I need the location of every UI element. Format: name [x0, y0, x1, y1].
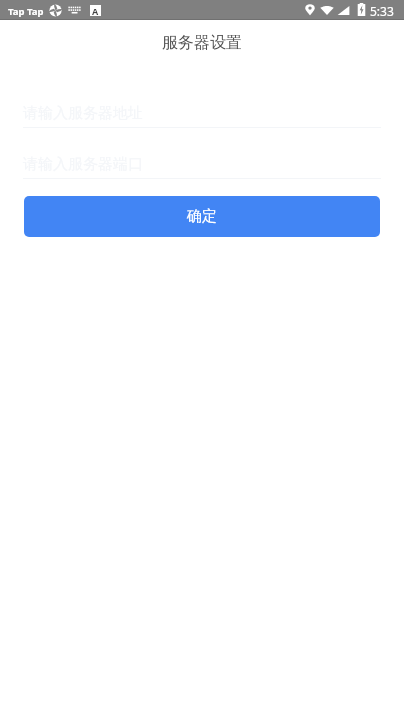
staticText: 请输入服务器地址 [23, 104, 143, 123]
other: Wi-Fi [320, 5, 334, 16]
other: Input method [90, 5, 101, 16]
staticText: 服务器设置 [162, 33, 242, 53]
other: Keyboard [68, 6, 81, 14]
button[interactable]: 请输入服务器端口 [23, 154, 381, 179]
button[interactable]: 请输入服务器地址 [23, 103, 381, 128]
staticText: Tap [27, 5, 44, 18]
staticText: 请输入服务器端口 [23, 155, 143, 174]
other: Battery charging [357, 3, 366, 16]
staticText: 5:33 [370, 3, 394, 19]
staticText: Tap [8, 5, 25, 18]
staticText: 确定 [187, 207, 217, 226]
button[interactable]: 确定 [24, 196, 380, 237]
other: Mobile signal [337, 5, 350, 16]
other: Location [305, 4, 315, 16]
other: App notification [49, 4, 62, 17]
staticText: A [92, 5, 99, 16]
